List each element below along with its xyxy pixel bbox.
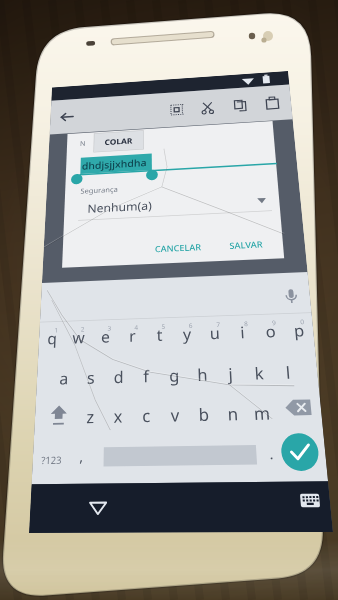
button[interactable]: Photo of a phone showing a text selectio… (0, 0, 338, 600)
